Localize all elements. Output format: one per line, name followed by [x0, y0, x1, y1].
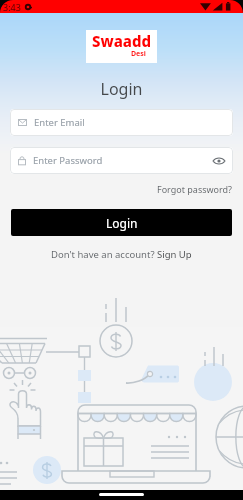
staticText: Enter Email — [34, 116, 225, 129]
button[interactable]: Sign Up — [157, 248, 192, 261]
button[interactable]: Login — [11, 209, 232, 236]
button[interactable]: Enter Email — [10, 109, 233, 136]
staticText: Login — [106, 215, 138, 231]
button[interactable]: Forgot password? — [0, 183, 232, 195]
staticText: Swaadd — [92, 31, 152, 51]
staticText: Enter Password — [33, 154, 213, 167]
staticText: 3:43 — [3, 1, 21, 13]
staticText: Login — [0, 78, 243, 100]
staticText: Desi — [131, 49, 146, 59]
button[interactable]: Enter Password — [10, 147, 233, 174]
button[interactable]: Show password — [213, 157, 225, 165]
staticText: Don't have an account? — [51, 248, 157, 261]
